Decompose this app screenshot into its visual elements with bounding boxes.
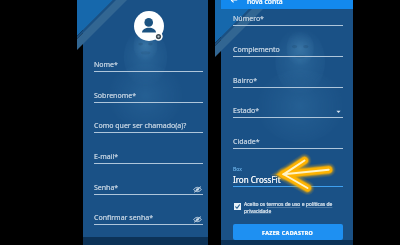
staticText: Bairro* bbox=[233, 76, 258, 86]
staticText: E-mail* bbox=[94, 152, 119, 162]
button[interactable]: Toggle password bbox=[193, 185, 202, 194]
staticText: Nome* bbox=[94, 60, 118, 70]
staticText: FAZER CADASTRO bbox=[262, 229, 314, 236]
button[interactable]: Profile photo bbox=[134, 8, 170, 44]
button[interactable]: FAZER CADASTRO bbox=[233, 224, 343, 240]
staticText: Iron CrossFit bbox=[233, 174, 281, 185]
staticText: Sobrenome* bbox=[94, 91, 136, 101]
staticText: Complemento bbox=[233, 45, 280, 55]
staticText: Aceito os termos de uso e políticas de p… bbox=[244, 201, 338, 214]
staticText: Como quer ser chamado(a)? bbox=[94, 121, 187, 131]
button[interactable]: Aceito os termos de uso e políticas de p… bbox=[233, 201, 343, 214]
staticText: Estado* bbox=[233, 106, 260, 116]
staticText: nova conta bbox=[247, 0, 283, 6]
staticText: Número* bbox=[233, 14, 264, 24]
button[interactable]: Toggle password bbox=[193, 215, 202, 224]
staticText: Senha* bbox=[94, 183, 119, 193]
staticText: Box bbox=[233, 166, 242, 173]
button[interactable]: Back bbox=[230, 0, 238, 4]
staticText: Cidade* bbox=[233, 137, 260, 147]
staticText: Confirmar senha* bbox=[94, 213, 154, 223]
